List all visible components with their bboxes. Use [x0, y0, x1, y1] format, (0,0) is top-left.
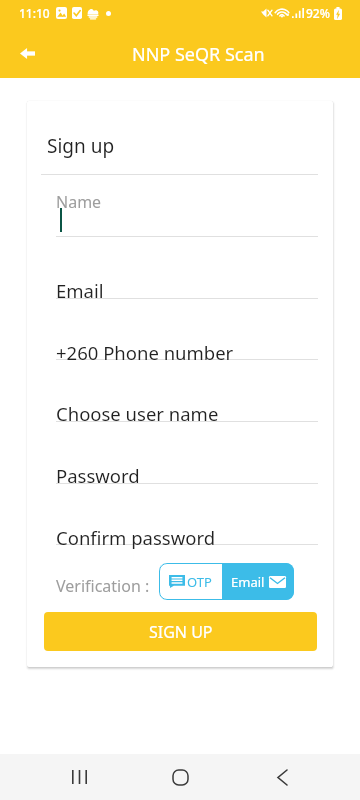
staticText: NNP SeQR Scan — [132, 42, 265, 67]
button[interactable]: Recents — [56, 754, 102, 800]
staticText: Verification : — [56, 575, 150, 597]
button[interactable]: OTP — [159, 563, 222, 600]
staticText: SIGN UP — [149, 621, 213, 643]
staticText: Sign up — [47, 133, 115, 159]
staticText: OTP — [187, 573, 212, 591]
button[interactable]: Home — [157, 754, 203, 800]
staticText: 11:10 — [19, 5, 50, 21]
button[interactable]: SIGN UP — [44, 612, 317, 651]
staticText: Password — [56, 463, 140, 488]
staticText: 92% — [306, 5, 330, 21]
staticText: Email — [56, 278, 104, 303]
button[interactable]: Back — [259, 754, 305, 800]
button[interactable]: Back — [9, 35, 45, 71]
staticText: Choose user name — [56, 401, 219, 426]
staticText: Email — [231, 573, 265, 591]
staticText: Name — [56, 191, 102, 213]
button[interactable]: Email — [222, 563, 294, 600]
staticText: +260 Phone number — [56, 340, 234, 365]
staticText: Confirm password — [56, 525, 216, 550]
